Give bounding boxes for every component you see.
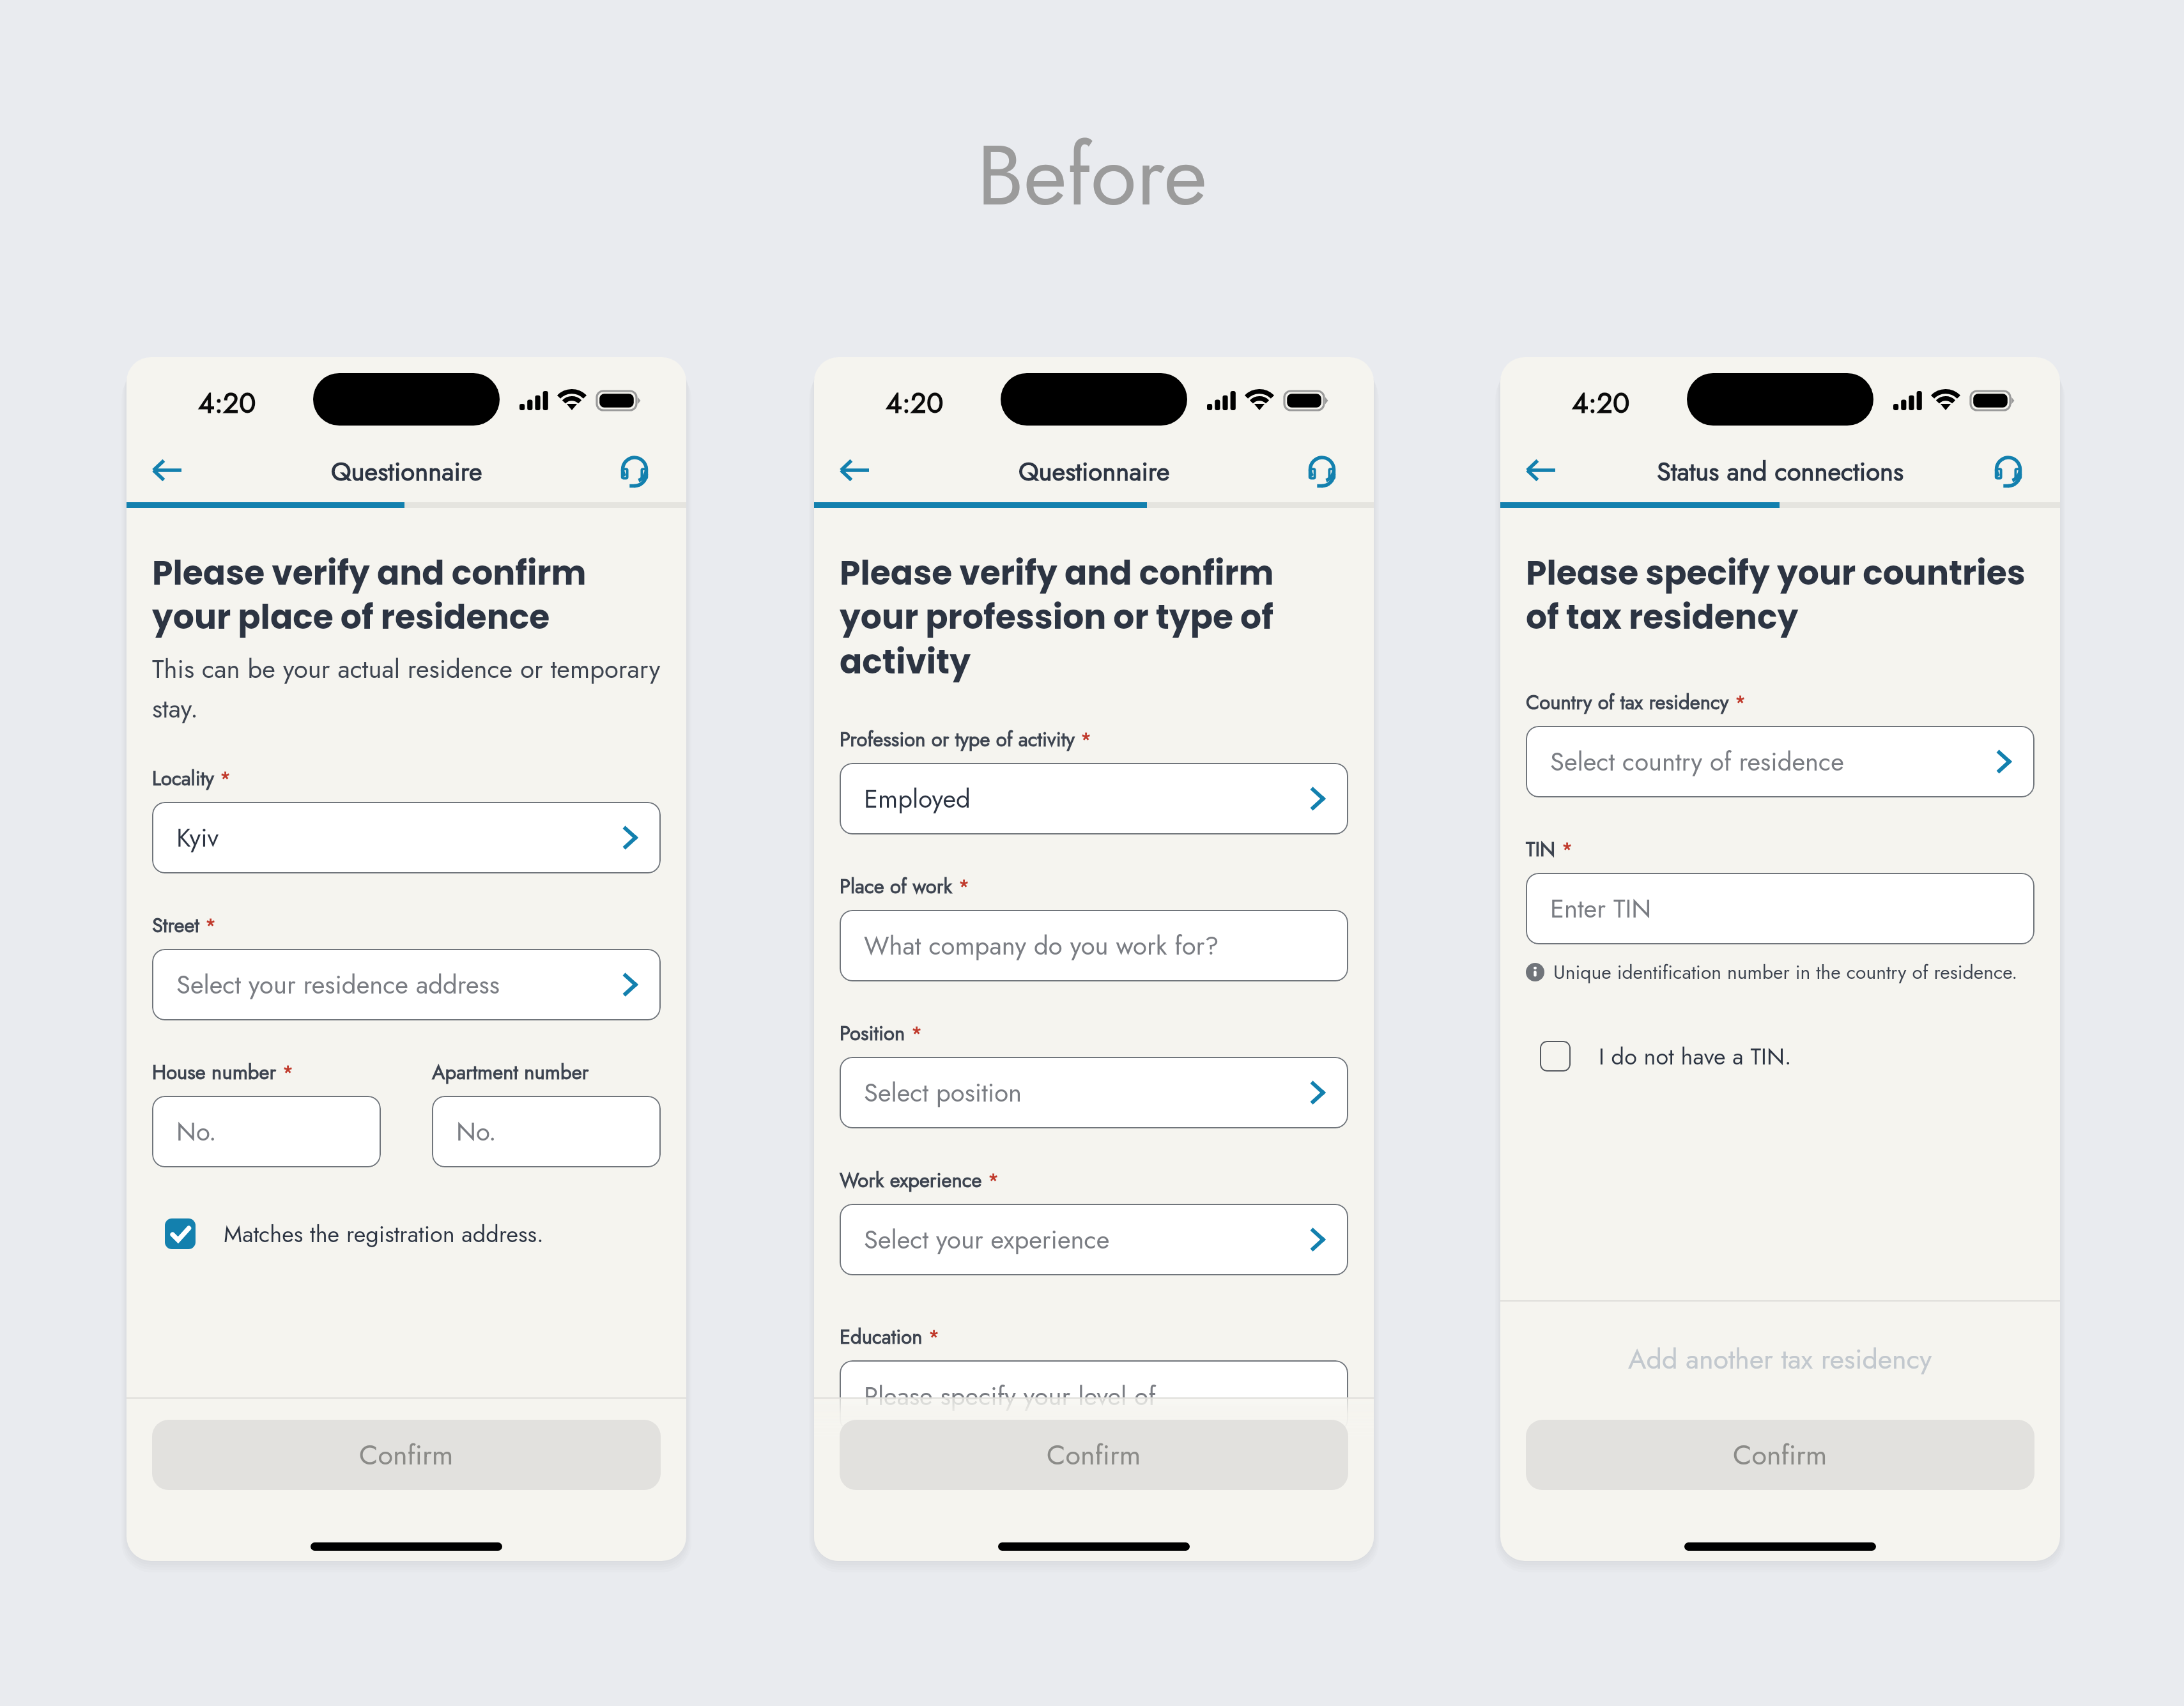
button[interactable]: Support <box>1295 443 1350 498</box>
button[interactable]: Kyiv <box>152 802 661 873</box>
staticText: House number <box>152 1058 277 1087</box>
button[interactable]: Confirm <box>1526 1420 2034 1490</box>
staticText: * <box>1562 836 1573 863</box>
staticText: No. <box>456 1113 496 1150</box>
button[interactable]: Select country of residence <box>1526 726 2034 797</box>
button[interactable]: Please specify your level of <box>840 1360 1348 1432</box>
staticText: 4:20 <box>886 383 944 424</box>
staticText: This can be your actual residence or tem… <box>152 650 661 727</box>
button[interactable]: What company do you work for? <box>840 910 1348 981</box>
staticText: * <box>1080 726 1092 753</box>
button[interactable]: Select your experience <box>840 1204 1348 1275</box>
staticText: Questionnaire <box>1019 453 1170 490</box>
button[interactable]: Enter TIN <box>1526 873 2034 944</box>
staticText: * <box>205 912 217 939</box>
staticText: Work experience <box>840 1166 982 1195</box>
staticText: No. <box>176 1113 217 1150</box>
button[interactable]: Add another tax residency <box>1500 1300 2060 1418</box>
staticText: Position <box>840 1019 905 1048</box>
button[interactable]: Back <box>1514 444 1567 496</box>
button[interactable]: Select your residence address <box>152 949 661 1020</box>
staticText: Profession or type of activity <box>840 725 1075 754</box>
button[interactable]: Back <box>141 444 193 496</box>
staticText: Locality <box>152 764 214 793</box>
staticText: Questionnaire <box>331 453 482 490</box>
staticText: Country of tax residency <box>1526 688 1729 717</box>
staticText: Apartment number <box>432 1058 589 1087</box>
staticText: * <box>928 1324 940 1351</box>
staticText: Please specify your level of <box>864 1378 1156 1415</box>
staticText: What company do you work for? <box>864 927 1219 964</box>
staticText: Place of work <box>840 872 953 901</box>
staticText: 4:20 <box>198 383 256 424</box>
staticText: TIN <box>1526 835 1556 864</box>
staticText: Confirm <box>1047 1435 1141 1475</box>
staticText: Before <box>0 115 2184 236</box>
button[interactable]: No. <box>152 1096 381 1167</box>
staticText: Select your residence address <box>176 966 500 1003</box>
staticText: * <box>1735 689 1746 716</box>
staticText: 4:20 <box>1572 383 1630 424</box>
staticText: Select your experience <box>864 1221 1110 1258</box>
staticText: I do not have a TIN. <box>1599 1040 1792 1073</box>
staticText: Unique identification number in the coun… <box>1553 958 2018 986</box>
staticText: * <box>958 873 970 900</box>
button[interactable]: Back <box>828 444 881 496</box>
button[interactable]: No. <box>432 1096 661 1167</box>
staticText: Select position <box>864 1074 1022 1111</box>
staticText: Add another tax residency <box>1628 1339 1932 1379</box>
staticText: Please specify your countries of tax res… <box>1526 549 2026 641</box>
staticText: Please verify and confirm your professio… <box>840 549 1274 686</box>
staticText: Employed <box>864 780 971 817</box>
button[interactable]: Select position <box>840 1057 1348 1128</box>
staticText: Please verify and confirm your place of … <box>152 549 587 641</box>
button[interactable]: Support <box>1981 443 2036 498</box>
staticText: Confirm <box>359 1435 454 1475</box>
staticText: * <box>911 1020 923 1047</box>
staticText: Kyiv <box>176 819 219 856</box>
button[interactable]: I do not have a TIN. <box>1540 1040 1792 1073</box>
staticText: Street <box>152 911 199 940</box>
staticText: Education <box>840 1323 923 1351</box>
staticText: Enter TIN <box>1550 890 1652 927</box>
staticText: Matches the registration address. <box>224 1217 544 1250</box>
button[interactable]: Support <box>607 443 662 498</box>
staticText: Confirm <box>1733 1435 1827 1475</box>
staticText: Select country of residence <box>1550 743 1844 780</box>
staticText: * <box>282 1059 294 1086</box>
staticText: * <box>220 765 231 792</box>
button[interactable]: Confirm <box>840 1420 1348 1490</box>
button[interactable]: Employed <box>840 763 1348 834</box>
button[interactable]: Confirm <box>152 1420 661 1490</box>
button[interactable]: Matches the registration address. <box>165 1217 661 1250</box>
staticText: * <box>988 1167 999 1194</box>
staticText: Status and connections <box>1657 453 1904 490</box>
